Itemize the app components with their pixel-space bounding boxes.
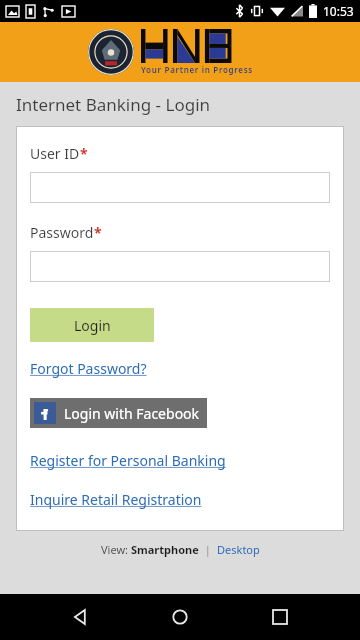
- staticText: *: [80, 144, 88, 163]
- button[interactable]: Recent apps: [260, 597, 300, 637]
- staticText: Your Partner in Progress: [141, 64, 253, 75]
- staticText: Smartphone: [131, 542, 199, 557]
- button[interactable]: Inquire Retail Registration: [30, 490, 202, 509]
- staticText: *: [94, 223, 102, 242]
- button[interactable]: Forgot Password?: [30, 359, 147, 378]
- staticText: Login with Facebook: [64, 404, 200, 423]
- staticText: Desktop: [217, 542, 260, 557]
- staticText: User ID: [30, 144, 80, 163]
- button[interactable]: Login with Facebook: [30, 398, 207, 428]
- button[interactable]: Desktop: [217, 542, 260, 557]
- button[interactable]: Login: [30, 308, 154, 342]
- button[interactable]: Home: [160, 597, 200, 637]
- staticText: Internet Banking - Login: [16, 93, 211, 116]
- button[interactable]: Register for Personal Banking: [30, 451, 226, 470]
- staticText: Password: [30, 223, 94, 242]
- button[interactable]: [30, 172, 330, 203]
- staticText: 10:53: [323, 3, 354, 19]
- staticText: Inquire Retail Registration: [30, 490, 202, 509]
- staticText: Forgot Password?: [30, 359, 147, 378]
- staticText: Register for Personal Banking: [30, 451, 226, 470]
- staticText: View:: [101, 542, 131, 557]
- button[interactable]: Back: [60, 597, 100, 637]
- staticText: |: [199, 542, 217, 557]
- staticText: Login: [74, 316, 111, 335]
- button[interactable]: [30, 251, 330, 282]
